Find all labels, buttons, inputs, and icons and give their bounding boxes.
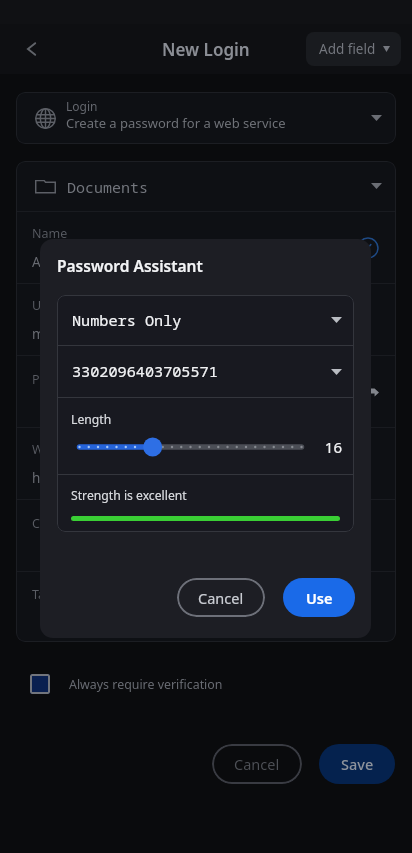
button[interactable]: Save [319, 744, 395, 784]
staticText: Length [71, 411, 112, 428]
button[interactable]: Always require verification [30, 674, 223, 694]
staticText: https://example.com [32, 469, 164, 487]
button[interactable]: Website [16, 428, 396, 499]
staticText: Add field [319, 40, 376, 58]
staticText: Comments [32, 515, 97, 532]
staticText: Use [306, 588, 333, 608]
button[interactable]: 3302096403705571 [57, 346, 354, 397]
staticText: Password Assistant [57, 255, 203, 276]
staticText: 16 [321, 437, 342, 457]
button[interactable]: Cancel [212, 744, 302, 784]
button[interactable]: Password [16, 356, 396, 427]
staticText: Numbers Only [72, 310, 182, 331]
staticText: Save [341, 754, 374, 774]
button[interactable]: Tags [16, 572, 396, 642]
staticText: Create a password for a web service [66, 114, 286, 132]
button[interactable]: Username [16, 284, 396, 355]
staticText: Cancel [234, 754, 280, 774]
staticText: Documents [67, 177, 149, 197]
button[interactable]: Generate [357, 237, 379, 259]
staticText: Account name [32, 253, 123, 271]
staticText: Tags [32, 586, 59, 603]
staticText: Website [32, 441, 79, 458]
button[interactable]: Password assistant [360, 382, 380, 402]
button[interactable]: Cancel [177, 578, 265, 617]
button[interactable]: Use [283, 578, 355, 617]
button[interactable]: Login [16, 92, 396, 144]
button[interactable]: Add field [306, 32, 401, 66]
staticText: Strength is excellent [71, 487, 187, 504]
staticText: Name [32, 225, 68, 242]
button[interactable]: Numbers Only [57, 295, 354, 345]
button[interactable]: Documents [16, 161, 396, 211]
staticText: Login [66, 98, 98, 114]
staticText: Username [32, 297, 93, 314]
button[interactable]: Back [10, 28, 52, 70]
staticText: New Login [162, 38, 250, 61]
staticText: Cancel [198, 588, 244, 608]
button[interactable]: Generate [16, 212, 396, 283]
staticText: me@example.com [32, 325, 150, 343]
staticText: Password [32, 371, 89, 388]
staticText: 3302096403705571 [72, 361, 218, 382]
staticText: Always require verification [69, 676, 223, 693]
button[interactable]: Comments [16, 500, 396, 571]
